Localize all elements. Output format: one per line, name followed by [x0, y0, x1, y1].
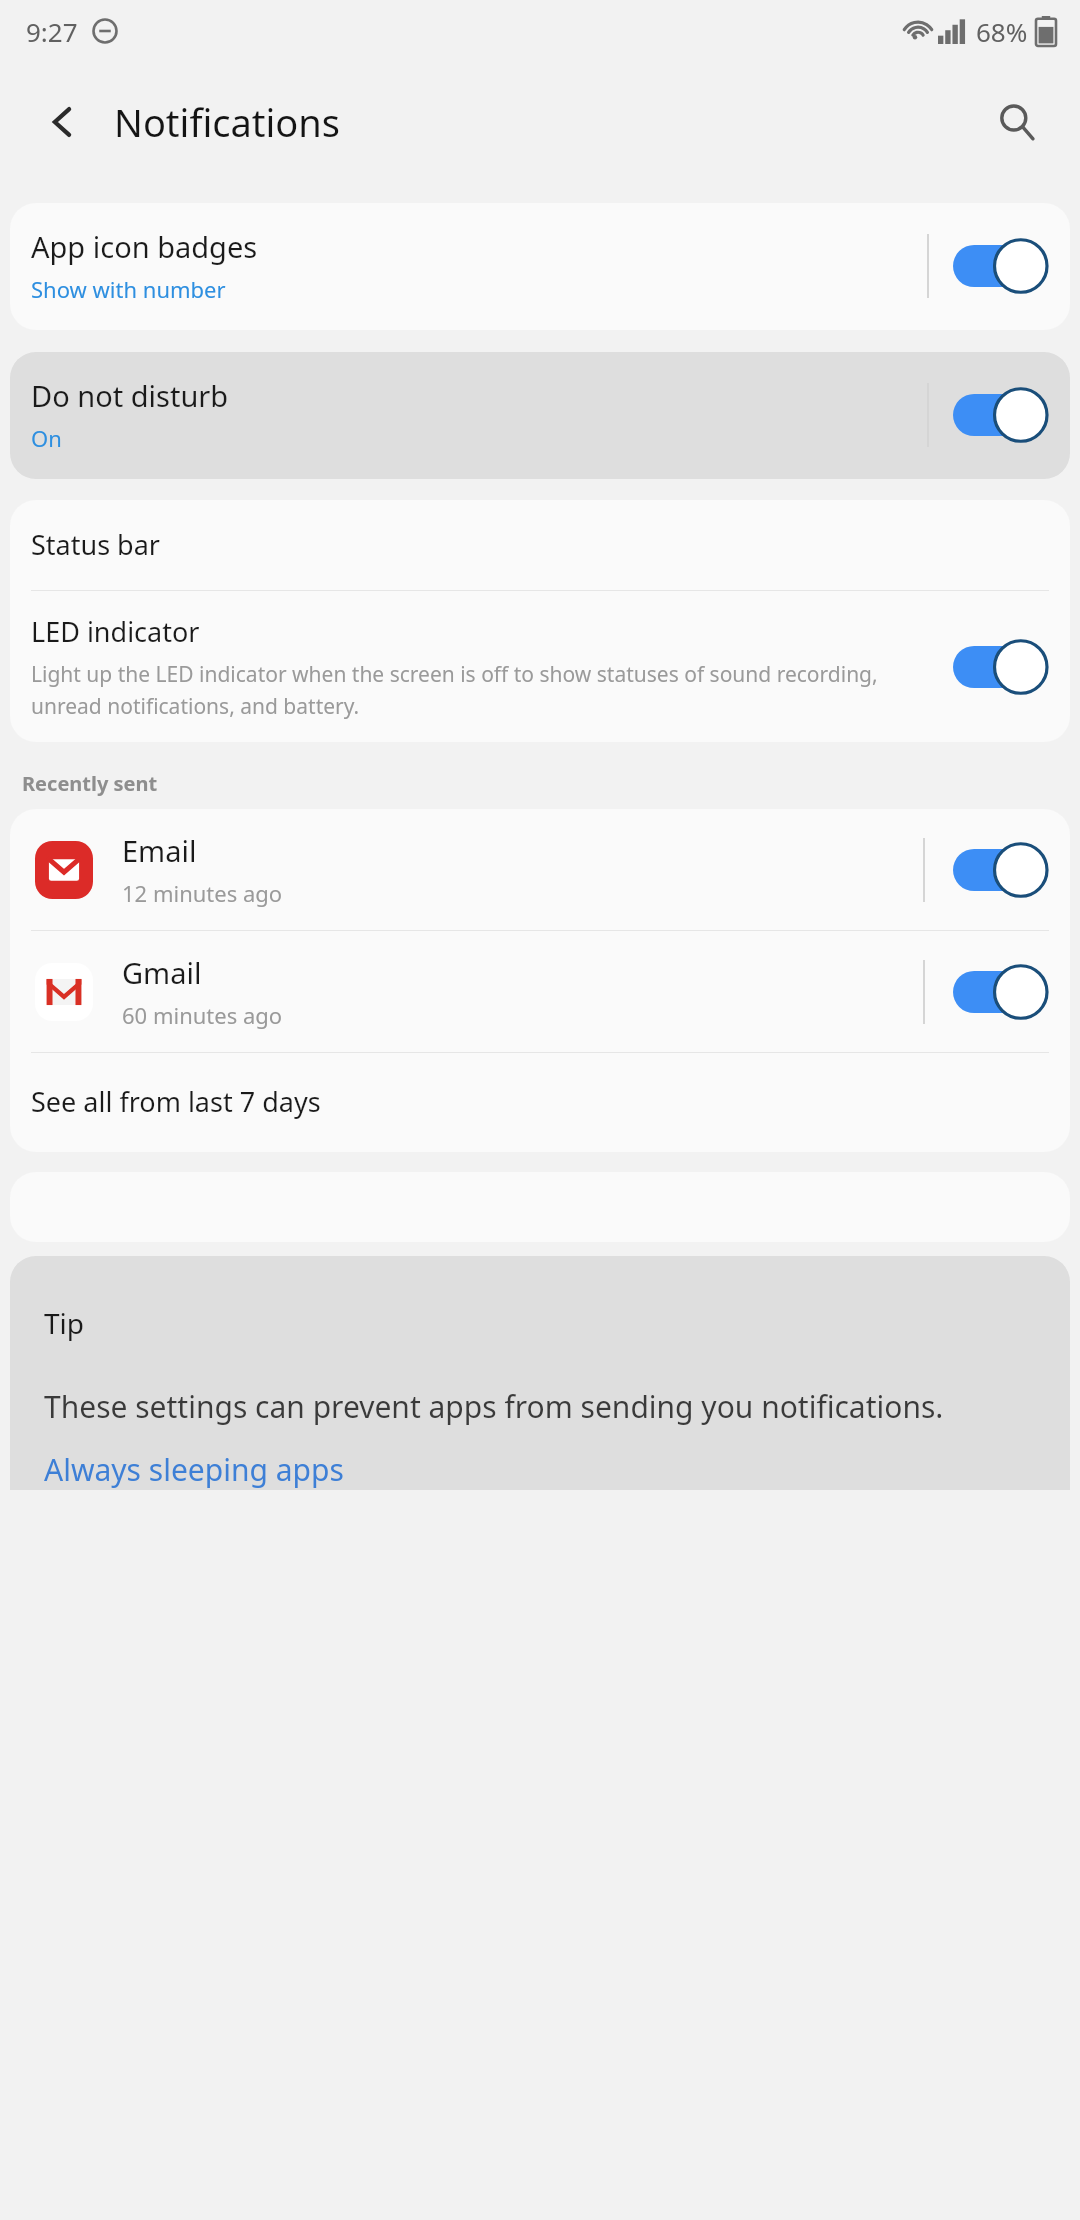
staticText: Recently sent: [22, 770, 158, 797]
staticText: LED indicator: [31, 613, 200, 650]
staticText: 9:27: [26, 14, 78, 49]
button[interactable]: LED indicator: [10, 591, 1070, 742]
staticText: Notifications: [114, 96, 341, 148]
staticText: 60 minutes ago: [122, 1000, 283, 1030]
button[interactable]: Do not disturb: [10, 352, 1070, 479]
button[interactable]: Toggle: [953, 234, 1049, 298]
button[interactable]: Toggle: [953, 383, 1049, 447]
staticText: Show with number: [31, 274, 226, 304]
button[interactable]: Toggle: [953, 838, 1049, 902]
staticText: Light up the LED indicator when the scre…: [31, 660, 929, 720]
staticText: These settings can prevent apps from sen…: [44, 1386, 944, 1427]
staticText: Email: [122, 831, 197, 870]
staticText: On: [31, 423, 62, 453]
staticText: Always sleeping apps: [44, 1449, 344, 1490]
staticText: Gmail: [122, 953, 202, 992]
button[interactable]: Email: [10, 809, 1070, 930]
button[interactable]: See all from last 7 days: [10, 1053, 1070, 1152]
button[interactable]: Gmail: [10, 931, 1070, 1052]
staticText: 12 minutes ago: [122, 878, 283, 908]
button[interactable]: Toggle: [953, 635, 1049, 699]
staticText: Tip: [44, 1304, 85, 1342]
button[interactable]: Search: [984, 89, 1050, 155]
button[interactable]: Status bar: [10, 500, 1070, 590]
button[interactable]: Tip: [10, 1256, 1070, 1490]
button[interactable]: Back: [30, 89, 96, 155]
staticText: Status bar: [31, 526, 161, 563]
button[interactable]: App icon badges: [10, 203, 1070, 330]
staticText: Do not disturb: [31, 376, 229, 415]
button[interactable]: Toggle: [953, 960, 1049, 1024]
staticText: See all from last 7 days: [31, 1083, 321, 1120]
staticText: 68%: [976, 14, 1028, 49]
staticText: App icon badges: [31, 227, 258, 266]
